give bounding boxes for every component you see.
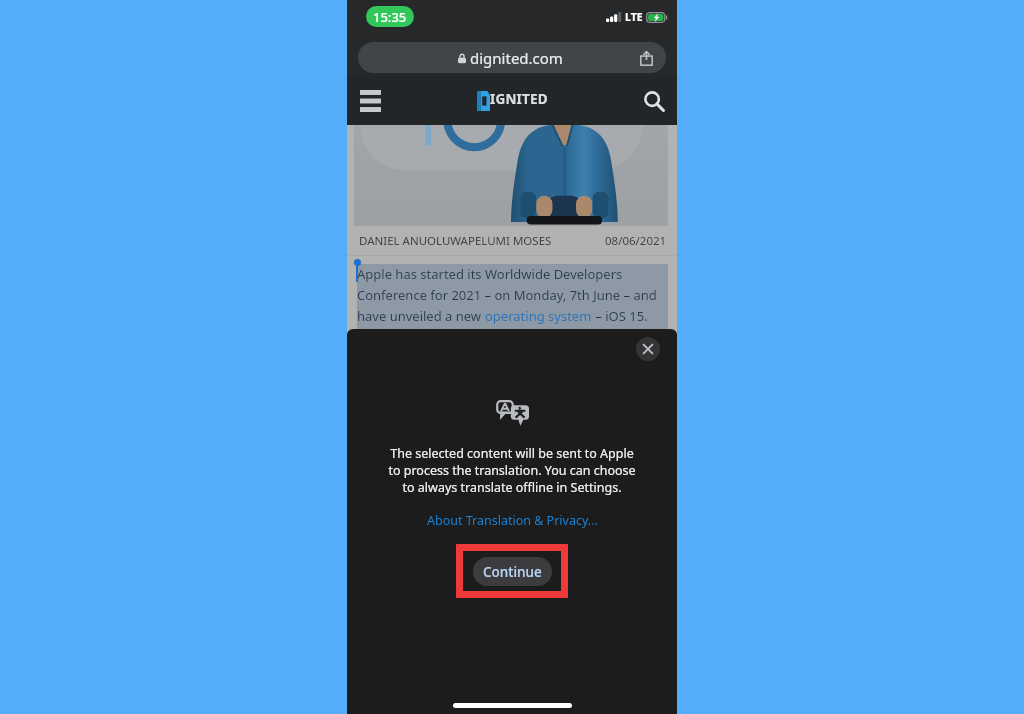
staticText: have unveiled a new [357, 307, 485, 325]
button[interactable]: Continue [473, 557, 552, 586]
button[interactable]: Menu [355, 86, 385, 116]
staticText: dignited.com [470, 48, 563, 68]
staticText: LTE [625, 10, 643, 24]
staticText: IGNITED [490, 90, 548, 108]
staticText: Apple has started its Worldwide Develope… [357, 265, 623, 283]
staticText: 08/06/2021 [605, 233, 667, 249]
staticText: The selected content will be sent to App… [388, 445, 636, 496]
staticText: DANIEL ANUOLUWAPELUMI MOSES [359, 233, 552, 249]
staticText: Conference for 2021 – on Monday, 7th Jun… [357, 286, 657, 304]
button[interactable]: Search [639, 86, 669, 116]
staticText: About Translation & Privacy... [427, 512, 598, 529]
button[interactable]: Share [635, 47, 657, 69]
staticText: 15:35 [373, 8, 407, 26]
staticText: operating system [485, 307, 592, 325]
button[interactable]: About Translation & Privacy... [421, 510, 604, 531]
button[interactable]: dignited.com [358, 42, 666, 73]
button[interactable]: Close [636, 337, 660, 361]
staticText: – iOS 15. [592, 307, 648, 325]
staticText: Continue [483, 563, 542, 581]
